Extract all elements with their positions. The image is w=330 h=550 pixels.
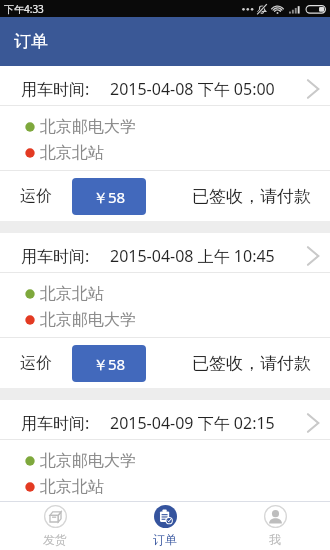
staticText: 我 [269,532,281,547]
button[interactable]: 发货 [0,501,110,550]
staticText: 下午4:33 [4,2,44,16]
staticText: 已签收，请付款 [192,186,311,207]
staticText: 2015-04-08 下午 05:00 [110,78,275,100]
staticText: 订单 [14,31,48,52]
staticText: ￥58 [93,354,126,374]
button[interactable]: 用车时间: [0,233,330,388]
staticText: ￥58 [93,187,126,207]
staticText: 发货 [43,532,67,547]
staticText: 2015-04-08 上午 10:45 [110,245,275,267]
staticText: 北京邮电大学 [40,117,136,137]
staticText: 北京邮电大学 [40,451,136,471]
staticText: 订单 [153,532,177,547]
staticText: 2015-04-09 下午 02:15 [110,412,275,434]
button[interactable]: 订单 [110,501,220,550]
staticText: 运价 [20,353,52,373]
staticText: 已签收，请付款 [192,353,311,374]
button[interactable]: ￥58 [72,178,146,215]
button[interactable]: 用车时间: [0,400,330,501]
button[interactable]: ￥58 [72,345,146,382]
staticText: 用车时间: [21,412,90,434]
staticText: 北京北站 [40,477,104,497]
staticText: 运价 [20,186,52,206]
staticText: 北京北站 [40,284,104,304]
staticText: 北京邮电大学 [40,310,136,330]
button[interactable]: 我 [220,501,330,550]
staticText: 北京北站 [40,143,104,163]
button[interactable]: 用车时间: [0,66,330,221]
staticText: 用车时间: [21,245,90,267]
staticText: 用车时间: [21,78,90,100]
